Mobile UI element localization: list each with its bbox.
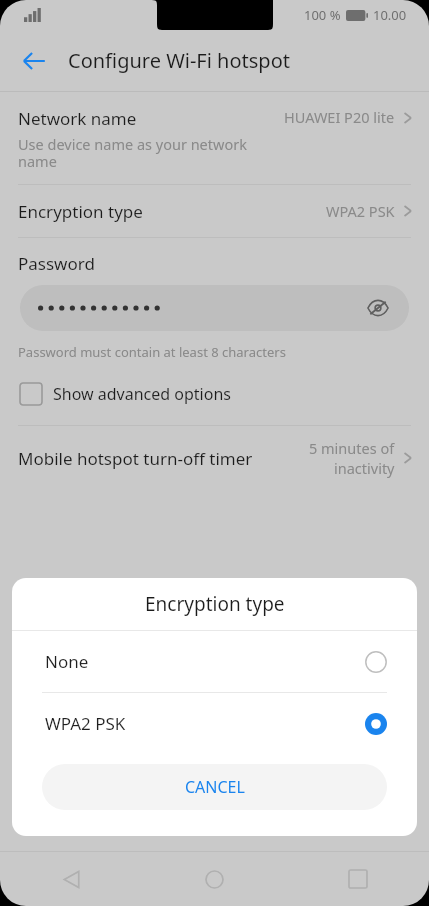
staticText: Network name: [18, 107, 137, 130]
staticText: Configure Wi-Fi hotspot: [68, 47, 290, 74]
button[interactable]: CANCEL: [42, 764, 387, 810]
button[interactable]: WPA2 PSK: [12, 693, 417, 754]
staticText: WPA2 PSK: [45, 712, 126, 735]
button[interactable]: Recent apps: [286, 852, 429, 906]
button[interactable]: Back: [0, 852, 143, 906]
staticText: Password: [18, 252, 95, 275]
staticText: 100 %: [304, 6, 341, 24]
staticText: 10.00: [373, 6, 407, 24]
staticText: Encryption type: [145, 591, 285, 617]
staticText: Mobile hotspot turn-off timer: [18, 447, 253, 470]
staticText: Show advanced options: [53, 383, 231, 405]
button[interactable]: Mobile hotspot turn-off timer: [0, 426, 429, 490]
staticText: WPA2 PSK: [326, 201, 395, 221]
staticText: 5 minutes of: [309, 438, 395, 458]
button[interactable]: Show advanced options: [0, 377, 429, 415]
button[interactable]: Encryption type: [0, 185, 429, 237]
staticText: Password must contain at least 8 charact…: [18, 343, 286, 361]
staticText: inactivity: [334, 458, 395, 478]
button[interactable]: Show password: [363, 293, 393, 323]
staticText: CANCEL: [185, 776, 245, 798]
staticText: Use device name as your network name: [18, 134, 253, 171]
button[interactable]: Back: [10, 37, 58, 85]
staticText: HUAWEI P20 lite: [284, 107, 395, 127]
button[interactable]: None: [12, 631, 417, 692]
button[interactable]: Network name: [0, 92, 429, 184]
staticText: Encryption type: [18, 200, 143, 223]
button[interactable]: Show password: [20, 285, 409, 331]
staticText: None: [45, 650, 89, 673]
